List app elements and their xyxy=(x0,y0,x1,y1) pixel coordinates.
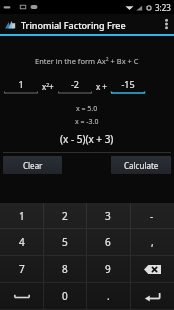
button[interactable]: Enter xyxy=(130,283,174,309)
button[interactable]: 1 xyxy=(0,203,43,228)
staticText: Enter in the form Ax2 + Bx + C xyxy=(35,56,139,66)
staticText: 8 xyxy=(62,262,68,276)
button[interactable]: Space xyxy=(0,283,43,309)
button[interactable]: 4 xyxy=(0,229,43,255)
staticText: 9 xyxy=(105,262,111,276)
staticText: -15 xyxy=(111,78,145,90)
button[interactable]: 9 xyxy=(86,256,130,282)
button[interactable]: -2 xyxy=(58,78,92,94)
staticText: Trinomial Factoring Free xyxy=(21,19,126,31)
staticText: 1 xyxy=(4,78,38,90)
button[interactable]: 3 xyxy=(86,203,130,228)
staticText: 5 xyxy=(62,235,68,249)
button[interactable]: . xyxy=(86,283,130,309)
button[interactable]: 1 xyxy=(4,78,38,94)
staticText: x + xyxy=(96,81,107,92)
staticText: 6 xyxy=(105,235,111,249)
staticText: 7 xyxy=(19,262,25,276)
staticText: 4 xyxy=(19,235,25,249)
staticText: 2 xyxy=(62,209,68,223)
staticText: - xyxy=(150,209,154,223)
staticText: (x - 5)(x + 3) xyxy=(60,132,114,146)
staticText: -2 xyxy=(58,78,92,90)
staticText: 1 xyxy=(19,209,25,223)
button[interactable]: Clear xyxy=(3,156,62,174)
button[interactable]: , xyxy=(130,229,174,255)
button[interactable]: Delete xyxy=(130,256,174,282)
button[interactable]: 2 xyxy=(43,203,86,228)
staticText: , xyxy=(151,235,154,249)
staticText: Calculate xyxy=(124,160,159,171)
staticText: 0 xyxy=(62,289,68,303)
staticText: Clear xyxy=(23,160,43,171)
button[interactable]: More options xyxy=(158,14,174,34)
button[interactable]: - xyxy=(130,203,174,228)
staticText: x2+ xyxy=(42,81,54,92)
staticText: 3 xyxy=(105,209,111,223)
button[interactable]: 6 xyxy=(86,229,130,255)
button[interactable]: Calculate xyxy=(111,156,171,174)
button[interactable]: 0 xyxy=(43,283,86,309)
button[interactable]: 8 xyxy=(43,256,86,282)
staticText: x = -3.0 xyxy=(75,117,99,127)
button[interactable]: -15 xyxy=(111,78,145,94)
staticText: x = 5.0 xyxy=(76,104,98,114)
staticText: 3:23 xyxy=(155,2,171,13)
button[interactable]: 7 xyxy=(0,256,43,282)
button[interactable]: 5 xyxy=(43,229,86,255)
staticText: . xyxy=(107,289,110,303)
